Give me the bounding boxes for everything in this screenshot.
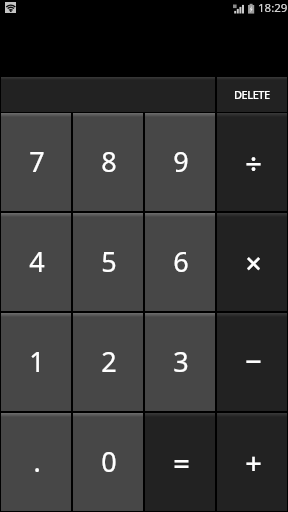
- button[interactable]: Decimal point: [0, 412, 72, 512]
- button[interactable]: Multiply: [216, 212, 288, 312]
- button[interactable]: One: [0, 312, 72, 412]
- staticText: −: [245, 341, 262, 380]
- button[interactable]: Four: [0, 212, 72, 312]
- staticText: 8: [101, 143, 117, 180]
- staticText: 5: [101, 243, 117, 280]
- button[interactable]: Three: [144, 312, 216, 412]
- staticText: 7: [29, 143, 45, 180]
- staticText: 0: [101, 443, 117, 480]
- staticText: ÷: [245, 143, 262, 182]
- button[interactable]: Five: [72, 212, 144, 312]
- staticText: =: [173, 443, 190, 482]
- staticText: ×: [245, 243, 262, 282]
- staticText: 6: [173, 243, 189, 280]
- staticText: 18:29: [258, 0, 288, 16]
- staticText: .: [33, 443, 41, 480]
- button[interactable]: Nine: [144, 112, 216, 212]
- staticText: 2: [101, 343, 117, 380]
- button[interactable]: Two: [72, 312, 144, 412]
- button[interactable]: Zero: [72, 412, 144, 512]
- staticText: 1: [29, 343, 45, 380]
- staticText: 4: [29, 243, 45, 280]
- button[interactable]: Minus: [216, 312, 288, 412]
- button[interactable]: Plus: [216, 412, 288, 512]
- button[interactable]: Eight: [72, 112, 144, 212]
- staticText: DELETE: [234, 87, 270, 102]
- button[interactable]: Divide: [216, 112, 288, 212]
- button[interactable]: Equals: [144, 412, 216, 512]
- button[interactable]: Six: [144, 212, 216, 312]
- button[interactable]: Seven: [0, 112, 72, 212]
- staticText: +: [245, 443, 262, 482]
- button[interactable]: DELETE: [216, 77, 288, 112]
- staticText: 9: [173, 143, 189, 180]
- staticText: 3: [173, 343, 189, 380]
